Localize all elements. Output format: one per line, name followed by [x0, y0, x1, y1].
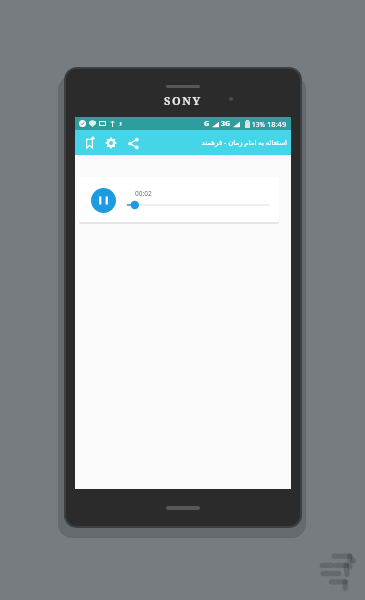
button[interactable]: Settings: [100, 132, 122, 154]
staticText: SONY: [164, 93, 202, 108]
button[interactable]: Pause: [79, 177, 279, 222]
button[interactable]: Bookmark: [78, 132, 100, 154]
button[interactable]: Share: [122, 132, 144, 154]
button[interactable]: Pause: [90, 187, 116, 213]
button[interactable]: Seek: [127, 198, 269, 212]
staticText: G: [204, 119, 210, 129]
staticText: 3G: [221, 119, 231, 129]
staticText: 18:49: [267, 119, 287, 129]
staticText: 00:02: [135, 189, 152, 198]
staticText: 13%: [252, 120, 265, 129]
staticText: استغاثه به امام زمان - فرهمند: [201, 138, 287, 148]
staticText: ۶: [119, 120, 123, 127]
